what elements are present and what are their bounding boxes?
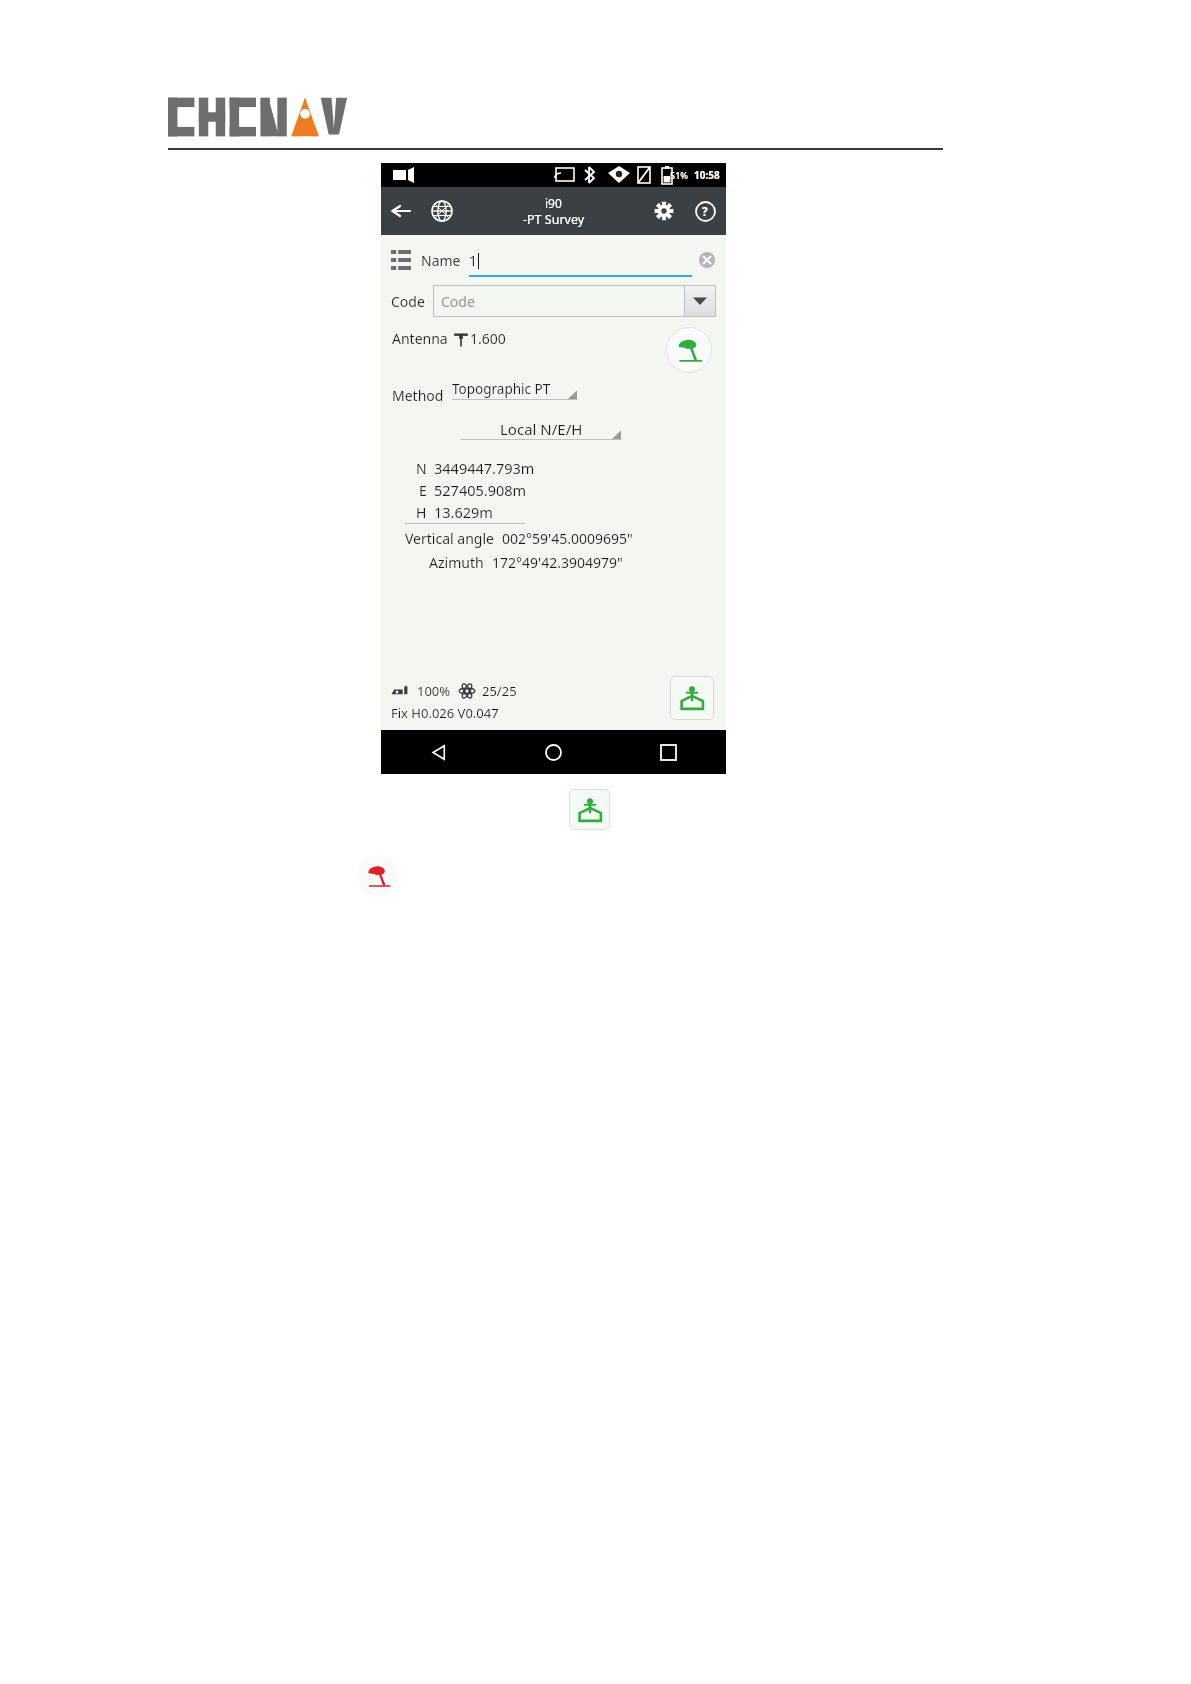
button[interactable]: Antenna setup bbox=[666, 327, 712, 373]
button[interactable]: Local N/E/H bbox=[461, 419, 621, 449]
staticText: Local N/E/H bbox=[500, 419, 583, 439]
staticText: 13.629m bbox=[434, 502, 493, 522]
staticText: H bbox=[416, 503, 427, 522]
button[interactable]: Help bbox=[684, 187, 726, 235]
button[interactable]: Topographic PT bbox=[452, 379, 577, 409]
staticText: 1.600 bbox=[470, 329, 506, 348]
button[interactable]: Back bbox=[381, 187, 421, 235]
button[interactable]: Save point bbox=[569, 789, 610, 830]
button[interactable]: Name bbox=[381, 243, 726, 277]
staticText: 51% bbox=[670, 169, 688, 181]
staticText: 25/25 bbox=[482, 682, 517, 700]
button[interactable]: Save point bbox=[670, 676, 714, 720]
button[interactable]: Back bbox=[381, 730, 496, 774]
staticText: Fix H0.026 V0.047 bbox=[391, 704, 499, 722]
button[interactable]: Antenna setup bbox=[357, 855, 398, 896]
staticText: -PT Survey bbox=[523, 211, 585, 228]
button[interactable]: Code dropdown bbox=[684, 285, 716, 317]
staticText: 3449447.793m bbox=[434, 458, 535, 478]
staticText: 1 bbox=[469, 251, 478, 270]
staticText: Code bbox=[441, 292, 475, 311]
staticText: 527405.908m bbox=[434, 480, 527, 500]
button[interactable]: Code bbox=[433, 285, 716, 317]
staticText: Name bbox=[421, 251, 461, 270]
staticText: Antenna bbox=[392, 329, 448, 348]
staticText: N bbox=[416, 459, 427, 478]
staticText: Vertical angle bbox=[405, 529, 494, 548]
staticText: 002°59'45.0009695" bbox=[502, 529, 633, 548]
button[interactable]: Home bbox=[496, 730, 611, 774]
staticText: Topographic PT bbox=[452, 380, 551, 398]
staticText: i90 bbox=[545, 195, 562, 211]
button[interactable]: Antenna bbox=[392, 329, 506, 348]
staticText: Code bbox=[391, 292, 425, 311]
button[interactable]: Recent apps bbox=[611, 730, 726, 774]
staticText: Azimuth bbox=[429, 553, 484, 572]
staticText: 10:58 bbox=[694, 168, 720, 182]
staticText: ? bbox=[702, 203, 708, 219]
staticText: 100% bbox=[417, 682, 451, 700]
staticText: Method bbox=[392, 386, 444, 405]
button[interactable]: Clear name bbox=[692, 243, 722, 277]
staticText: E bbox=[419, 481, 427, 500]
staticText: 172°49'42.3904979" bbox=[492, 553, 623, 572]
button[interactable]: Settings bbox=[644, 187, 684, 235]
button[interactable]: Coordinate system bbox=[421, 187, 463, 235]
